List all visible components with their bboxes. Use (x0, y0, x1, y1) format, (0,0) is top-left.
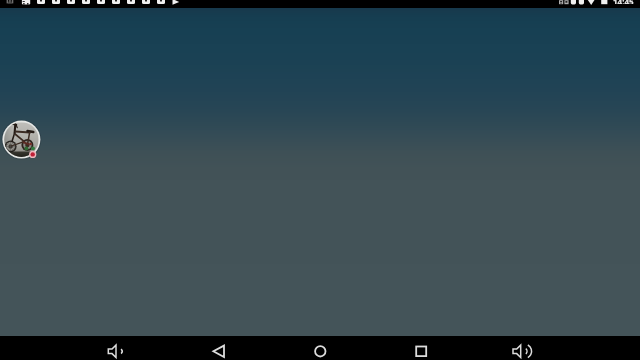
staticText: 14:45 (613, 0, 634, 4)
button[interactable]: Home (295, 336, 345, 360)
button[interactable]: Volume down (90, 336, 140, 360)
button[interactable]: Contact avatar (1, 119, 42, 160)
button[interactable]: Back (194, 336, 244, 360)
button[interactable]: Volume up (497, 336, 547, 360)
button[interactable]: Recent apps (396, 336, 446, 360)
